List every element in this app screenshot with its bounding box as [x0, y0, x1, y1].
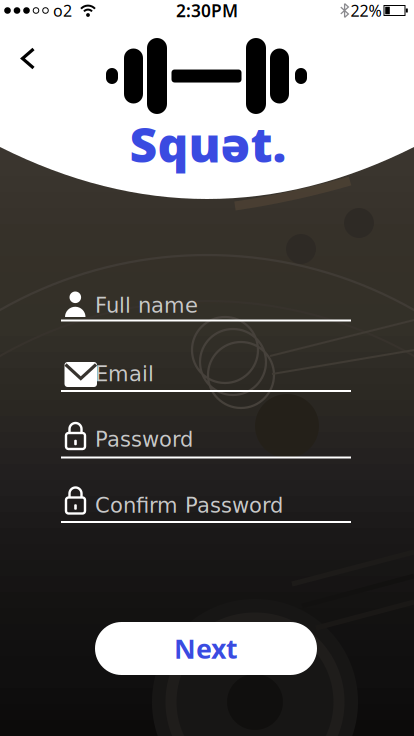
button[interactable]: Next — [95, 622, 317, 675]
staticText: 2:30PM — [176, 0, 238, 22]
staticText: 22% — [350, 0, 381, 21]
staticText: Full name — [95, 293, 198, 318]
staticText: Squət. — [129, 112, 286, 176]
staticText: Confirm Password — [95, 493, 283, 518]
button[interactable]: Back — [20, 44, 37, 73]
staticText: Email — [95, 362, 154, 386]
staticText: o2 — [53, 0, 72, 21]
staticText: Next — [174, 631, 238, 666]
staticText: Password — [95, 427, 193, 452]
